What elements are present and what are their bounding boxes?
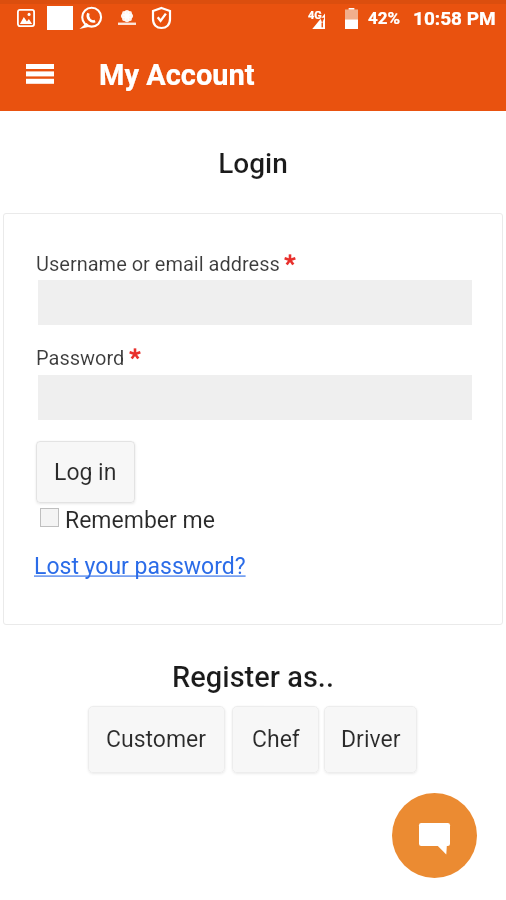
button[interactable]: Open chat (392, 793, 477, 878)
staticText: Customer (106, 726, 207, 753)
staticText: Login (0, 147, 506, 180)
button[interactable]: Log in (36, 441, 135, 503)
staticText: 42% (368, 8, 401, 28)
staticText: 4G (308, 9, 322, 22)
staticText: Driver (341, 726, 401, 753)
staticText: Remember me (65, 507, 215, 534)
staticText: Register as.. (0, 660, 506, 694)
button[interactable]: Open navigation menu (12, 49, 68, 105)
button[interactable]: Chef (232, 706, 319, 773)
button[interactable]: Customer (88, 706, 225, 773)
button[interactable]: Driver (324, 706, 417, 773)
staticText: Chef (252, 726, 300, 753)
staticText: Log in (54, 459, 117, 486)
staticText: Password (36, 346, 125, 369)
staticText: 10:58 PM (413, 7, 496, 29)
staticText: Username or email address (36, 252, 280, 275)
button[interactable]: Lost your password? (34, 553, 246, 580)
button[interactable]: Remember me (38, 507, 215, 534)
staticText: My Account (99, 58, 255, 92)
